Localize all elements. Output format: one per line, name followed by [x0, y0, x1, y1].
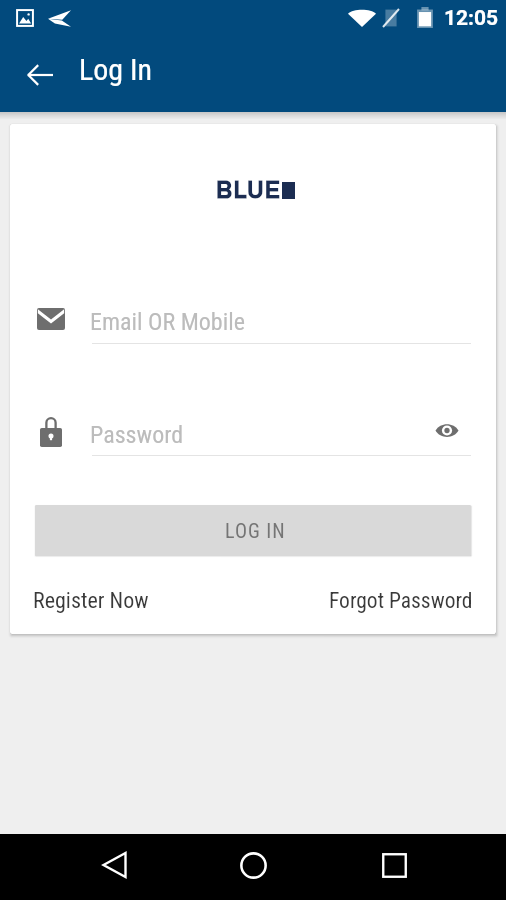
button[interactable]: Forgot Password [329, 588, 473, 613]
button[interactable]: Back [26, 61, 53, 88]
staticText: 12:05 [444, 6, 499, 31]
button[interactable]: Home [229, 841, 277, 889]
button[interactable]: LOG IN [35, 505, 471, 556]
staticText: LOG IN [225, 519, 286, 542]
staticText: Email OR Mobile [90, 308, 245, 336]
button[interactable]: Register Now [33, 588, 149, 614]
button[interactable]: Recents [370, 841, 418, 889]
button[interactable]: Back [90, 841, 138, 889]
staticText: Password [90, 421, 184, 449]
button[interactable]: Show password [436, 415, 471, 446]
staticText: Log In [79, 52, 153, 87]
staticText: BLUE [216, 178, 282, 203]
staticText: Register Now [33, 588, 149, 614]
staticText: Forgot Password [329, 588, 473, 613]
